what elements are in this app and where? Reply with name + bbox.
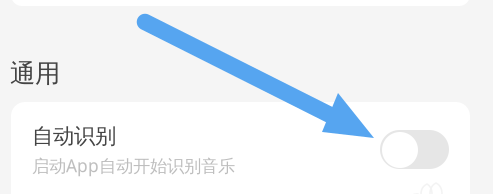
staticText: 启动App自动开始识别音乐 — [32, 154, 235, 177]
staticText: 自动识别 — [32, 123, 116, 149]
staticText: 通用 — [10, 58, 60, 89]
button[interactable]: 自动识别 — [11, 102, 470, 194]
